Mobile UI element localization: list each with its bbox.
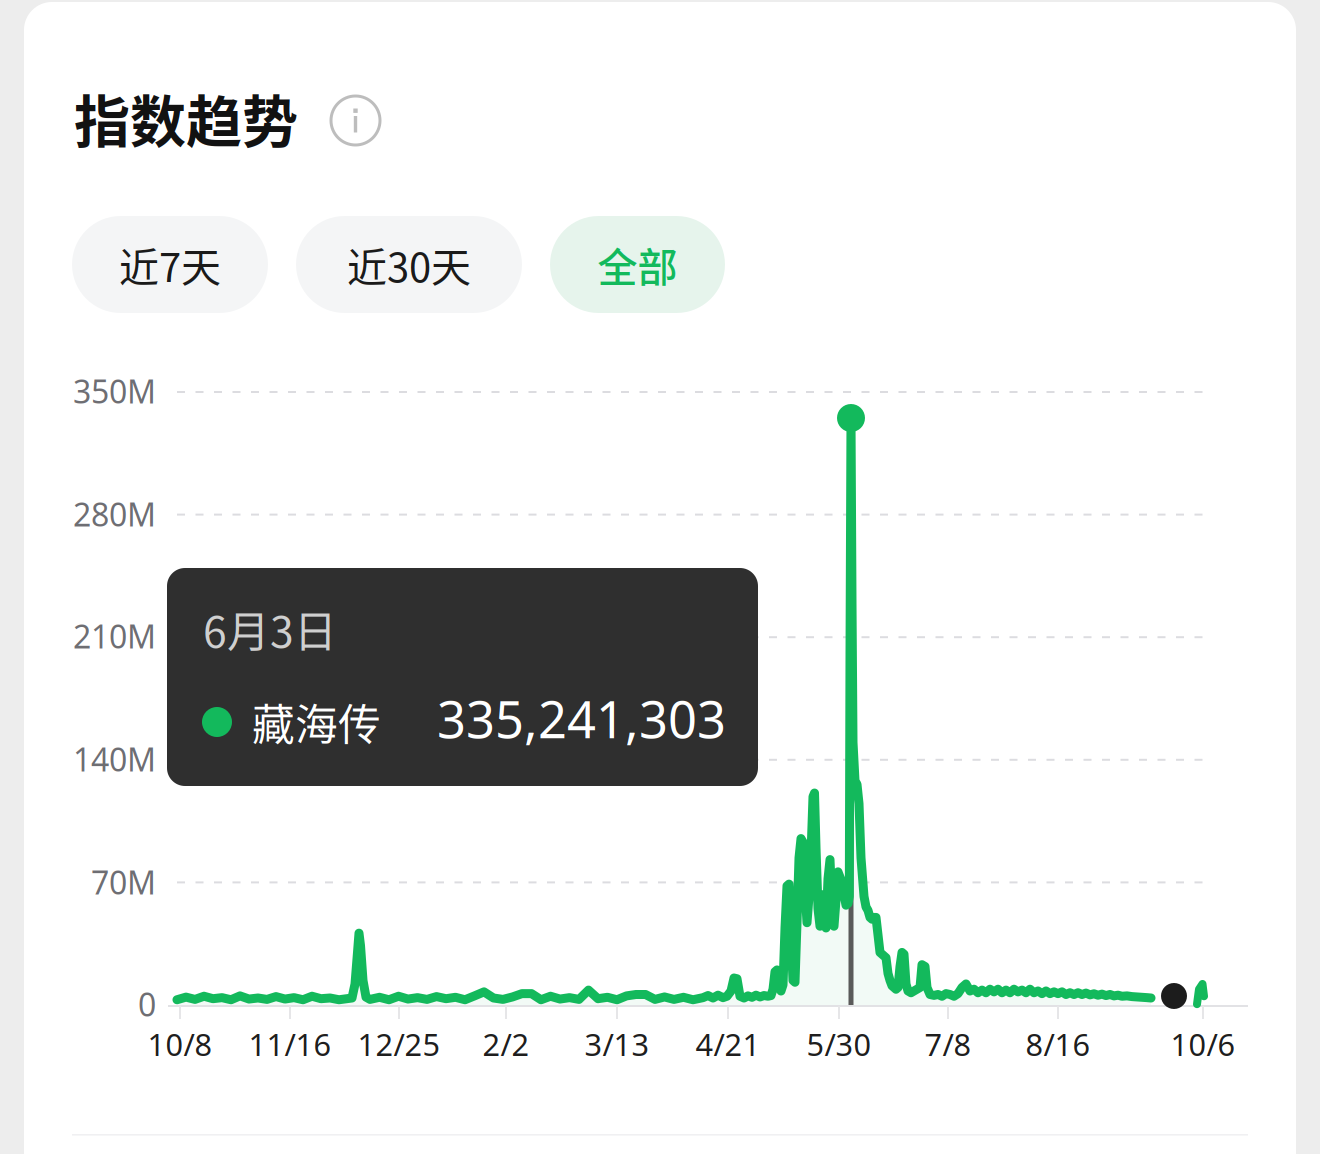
staticText: 70M [91,861,156,903]
staticText: 6月3日 [203,598,337,660]
staticText: 12/25 [357,1024,440,1064]
button[interactable]: About index trend [331,96,380,145]
staticText: 8/16 [1025,1024,1090,1064]
staticText: 指数趋势 [74,77,298,158]
staticText: 210M [73,615,156,657]
staticText: 3/13 [584,1024,649,1064]
staticText: 2/2 [482,1024,529,1064]
button[interactable]: 全部 [550,216,725,313]
staticText: 近30天 [347,235,471,293]
staticText: 5/30 [806,1024,871,1064]
staticText: 350M [73,370,156,412]
staticText: 10/6 [1170,1024,1235,1064]
staticText: 4/21 [695,1024,760,1064]
staticText: 0 [138,983,156,1025]
staticText: 280M [73,493,156,535]
staticText: 140M [73,738,156,780]
staticText: 335,241,303 [437,685,726,752]
button[interactable]: 6月3日 [167,568,758,786]
staticText: 7/8 [924,1024,971,1064]
staticText: 全部 [597,235,677,293]
button[interactable]: 近7天 [72,216,268,313]
staticText: 11/16 [248,1024,331,1064]
button[interactable]: 近30天 [296,216,522,313]
staticText: 藏海传 [252,691,381,753]
staticText: 10/8 [147,1024,212,1064]
staticText: 近7天 [119,235,221,293]
